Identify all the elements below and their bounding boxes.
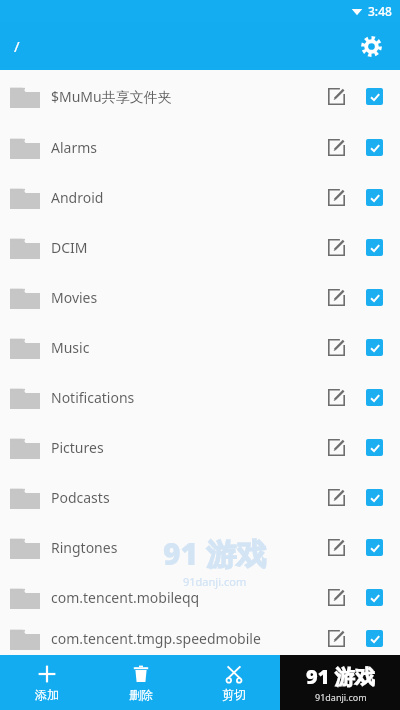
button[interactable]: com.tencent.mobileqq bbox=[0, 572, 400, 622]
button[interactable]: Select bbox=[357, 430, 391, 464]
button[interactable]: com.tencent.tmgp.speedmobile bbox=[0, 622, 400, 654]
staticText: Android bbox=[51, 188, 319, 207]
button[interactable]: Alarms bbox=[0, 122, 400, 172]
staticText: Music bbox=[51, 338, 319, 357]
button[interactable]: Movies bbox=[0, 272, 400, 322]
button[interactable]: Rename bbox=[319, 430, 353, 464]
button[interactable]: Select bbox=[357, 230, 391, 264]
button[interactable]: Rename bbox=[319, 280, 353, 314]
button[interactable]: Select bbox=[357, 580, 391, 614]
button[interactable]: Select bbox=[357, 79, 391, 113]
staticText: com.tencent.tmgp.speedmobile bbox=[51, 629, 319, 648]
button[interactable]: Select bbox=[357, 480, 391, 514]
button[interactable]: Rename bbox=[319, 580, 353, 614]
button[interactable]: Rename bbox=[319, 130, 353, 164]
staticText: 91danji.com bbox=[315, 691, 367, 703]
staticText: $MuMu共享文件夹 bbox=[51, 87, 319, 106]
staticText: Movies bbox=[51, 288, 319, 307]
button[interactable]: Rename bbox=[319, 330, 353, 364]
staticText: Podcasts bbox=[51, 488, 319, 507]
staticText: Notifications bbox=[51, 388, 319, 407]
button[interactable]: Music bbox=[0, 322, 400, 372]
staticText: Pictures bbox=[51, 438, 319, 457]
staticText: 91 游戏 bbox=[163, 533, 266, 574]
button[interactable]: Select bbox=[357, 622, 391, 654]
staticText: com.tencent.mobileqq bbox=[51, 588, 319, 607]
button[interactable]: Select bbox=[357, 280, 391, 314]
staticText: Ringtones bbox=[51, 538, 319, 557]
button[interactable]: Select bbox=[357, 330, 391, 364]
button[interactable]: Rename bbox=[319, 380, 353, 414]
staticText: 删除 bbox=[129, 687, 153, 702]
button[interactable]: Rename bbox=[319, 480, 353, 514]
staticText: / bbox=[14, 36, 20, 56]
staticText: 剪切 bbox=[222, 687, 246, 702]
button[interactable]: Select bbox=[357, 380, 391, 414]
button[interactable]: Select bbox=[357, 180, 391, 214]
button[interactable]: Rename bbox=[319, 79, 353, 113]
staticText: 添加 bbox=[35, 687, 59, 702]
button[interactable]: Podcasts bbox=[0, 472, 400, 522]
button[interactable]: 删除 bbox=[94, 655, 187, 710]
button[interactable]: Settings bbox=[352, 27, 390, 65]
button[interactable]: Rename bbox=[319, 180, 353, 214]
staticText: 91 游戏 bbox=[306, 663, 375, 690]
button[interactable]: 剪切 bbox=[187, 655, 280, 710]
button[interactable]: Android bbox=[0, 172, 400, 222]
button[interactable]: Notifications bbox=[0, 372, 400, 422]
staticText: DCIM bbox=[51, 238, 319, 257]
button[interactable]: 添加 bbox=[0, 655, 94, 710]
button[interactable]: Pictures bbox=[0, 422, 400, 472]
staticText: 3:48 bbox=[368, 3, 392, 19]
button[interactable]: Select bbox=[357, 530, 391, 564]
button[interactable]: Ringtones bbox=[0, 522, 400, 572]
button[interactable]: Rename bbox=[319, 230, 353, 264]
button[interactable]: DCIM bbox=[0, 222, 400, 272]
staticText: Alarms bbox=[51, 138, 319, 157]
button[interactable]: Rename bbox=[319, 530, 353, 564]
staticText: 91danji.com bbox=[183, 574, 247, 589]
button[interactable]: $MuMu共享文件夹 bbox=[0, 70, 400, 122]
button[interactable]: Rename bbox=[319, 622, 353, 654]
button[interactable]: Select bbox=[357, 130, 391, 164]
